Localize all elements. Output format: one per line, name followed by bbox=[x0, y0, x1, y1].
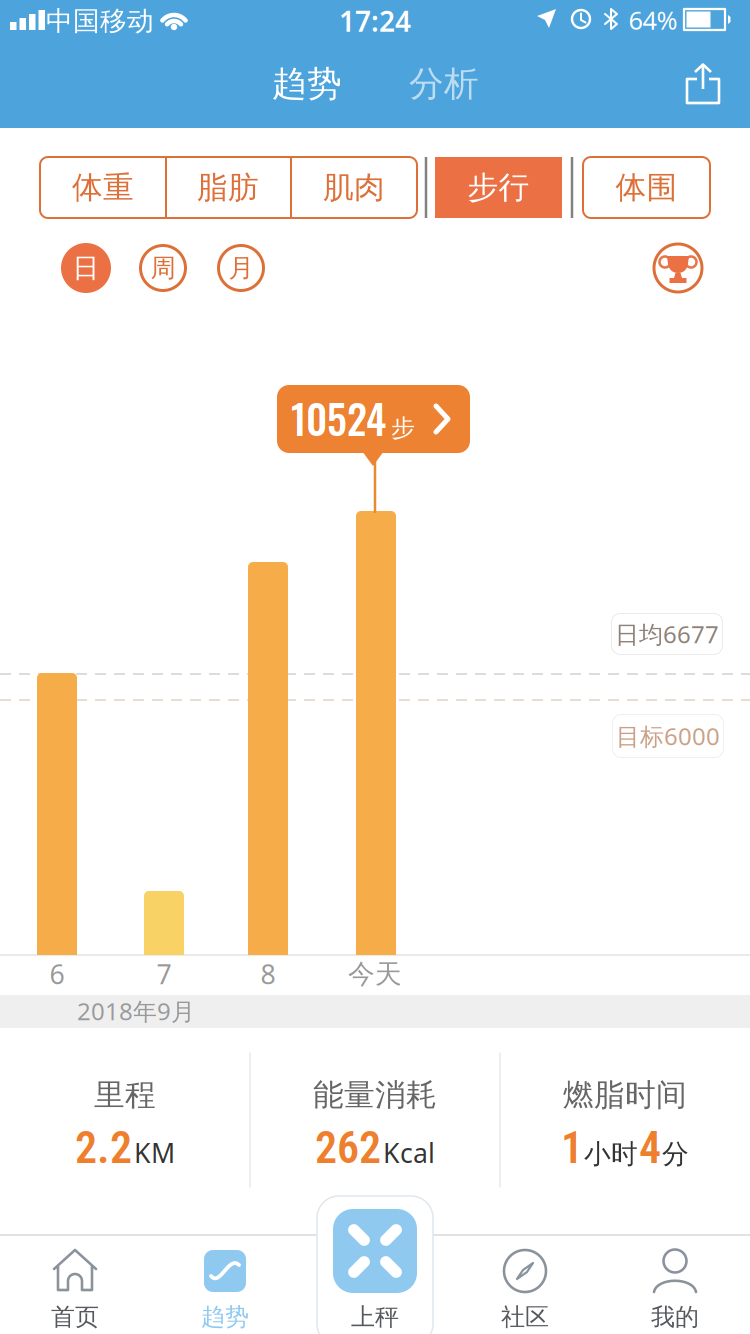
staticText: 体围 bbox=[615, 169, 677, 206]
staticText: 首页 bbox=[51, 1302, 99, 1332]
button[interactable]: 月 bbox=[218, 245, 263, 290]
button[interactable]: 9月8日 bbox=[248, 562, 288, 955]
button[interactable]: 今天 bbox=[356, 511, 396, 955]
button[interactable]: 分析 bbox=[409, 63, 479, 105]
button[interactable]: 我的 bbox=[600, 1237, 750, 1333]
staticText: 10524 bbox=[291, 388, 386, 448]
staticText: 周 bbox=[150, 252, 175, 283]
button[interactable]: Share bbox=[683, 63, 723, 105]
staticText: 4 bbox=[639, 1122, 661, 1174]
button[interactable]: 步行 bbox=[435, 157, 562, 218]
button[interactable]: 日 bbox=[61, 243, 111, 293]
staticText: 燃脂时间 bbox=[563, 1076, 687, 1114]
staticText: 64% bbox=[628, 3, 677, 37]
button[interactable]: 社区 bbox=[450, 1237, 600, 1333]
button[interactable]: 脂肪 bbox=[166, 157, 290, 218]
staticText: 月 bbox=[228, 252, 253, 283]
staticText: KM bbox=[134, 1135, 175, 1170]
staticText: 趋势 bbox=[272, 63, 342, 105]
staticText: 里程 bbox=[94, 1076, 156, 1114]
button[interactable]: 9月7日 bbox=[144, 891, 184, 955]
staticText: 1 bbox=[561, 1122, 583, 1174]
staticText: 脂肪 bbox=[197, 169, 259, 206]
button[interactable]: 首页 bbox=[0, 1237, 150, 1333]
staticText: 社区 bbox=[501, 1302, 549, 1332]
staticText: 7 bbox=[156, 956, 171, 992]
staticText: 步行 bbox=[467, 169, 529, 206]
staticText: 上秤 bbox=[351, 1302, 399, 1332]
staticText: 小时 bbox=[584, 1138, 638, 1171]
staticText: 日均6677 bbox=[615, 618, 719, 650]
button[interactable]: Rankings bbox=[654, 244, 702, 292]
button[interactable]: 9月6日 bbox=[37, 673, 77, 955]
button[interactable]: 上秤 bbox=[300, 1237, 450, 1333]
button[interactable]: 肌肉 bbox=[292, 157, 416, 218]
staticText: 中国移动 bbox=[46, 5, 154, 37]
button[interactable]: 周 bbox=[140, 245, 185, 290]
staticText: 8 bbox=[260, 956, 275, 992]
button[interactable]: 10524 bbox=[277, 385, 470, 467]
staticText: Kcal bbox=[383, 1135, 435, 1170]
button[interactable]: 趋势 bbox=[150, 1237, 300, 1333]
staticText: 今天 bbox=[348, 958, 402, 990]
staticText: 262 bbox=[315, 1122, 381, 1174]
staticText: 能量消耗 bbox=[313, 1076, 437, 1114]
staticText: 趋势 bbox=[201, 1302, 249, 1332]
staticText: 分 bbox=[662, 1138, 689, 1171]
staticText: 目标6000 bbox=[616, 720, 720, 752]
staticText: 日 bbox=[72, 252, 99, 284]
button[interactable]: 体重 bbox=[41, 157, 165, 218]
button[interactable]: 趋势 bbox=[272, 63, 342, 105]
staticText: 体重 bbox=[72, 169, 134, 206]
button[interactable]: 体围 bbox=[583, 157, 710, 218]
staticText: 17:24 bbox=[339, 2, 411, 40]
staticText: 2.2 bbox=[75, 1122, 132, 1174]
staticText: 我的 bbox=[651, 1302, 699, 1332]
staticText: 2018年9月 bbox=[77, 995, 195, 1027]
staticText: 分析 bbox=[409, 63, 479, 105]
button[interactable]: Weigh in bbox=[333, 1209, 417, 1293]
staticText: 6 bbox=[49, 956, 64, 992]
staticText: 肌肉 bbox=[323, 169, 385, 206]
staticText: 步 bbox=[391, 413, 415, 443]
